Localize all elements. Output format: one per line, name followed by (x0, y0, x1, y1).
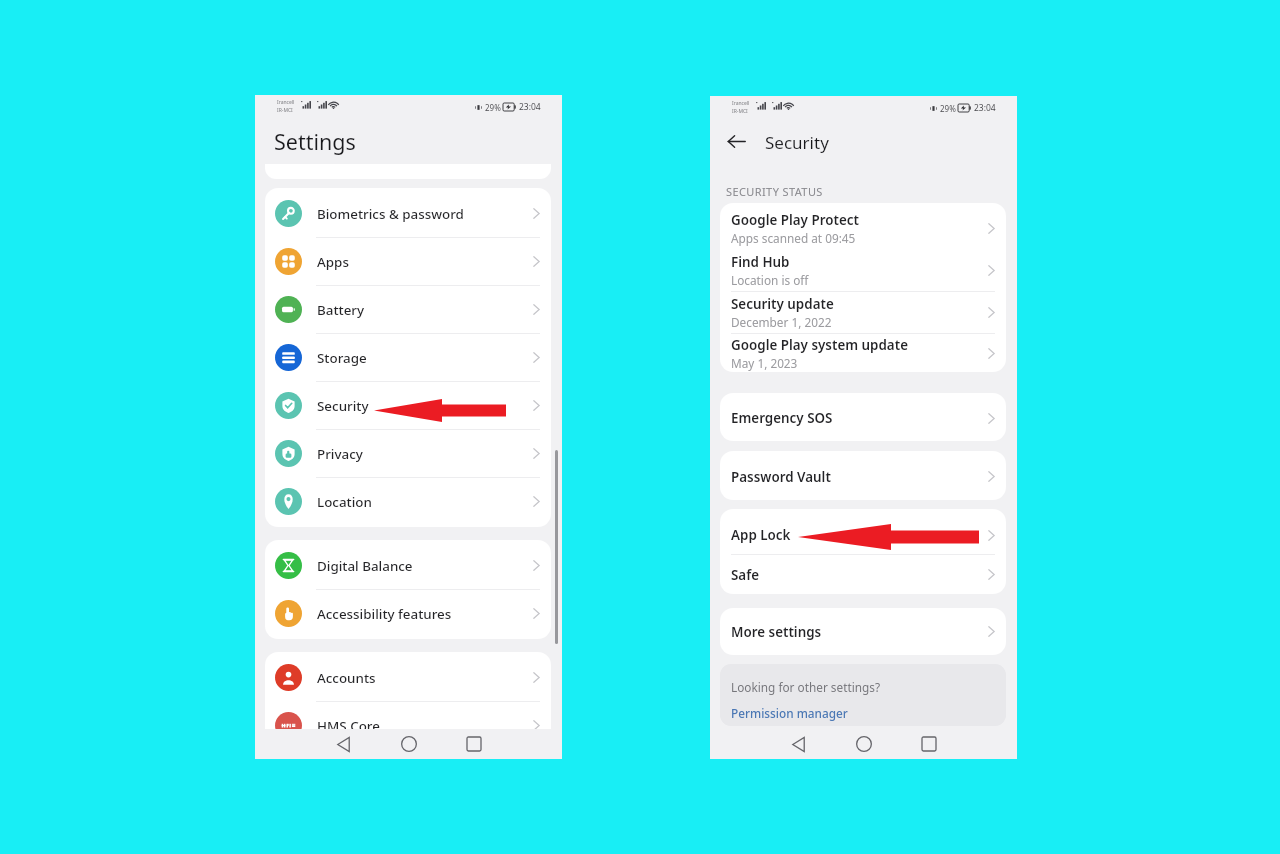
button[interactable]: App Lock (720, 516, 1006, 555)
button[interactable]: Security update (720, 291, 1006, 333)
staticText: Location is off (731, 272, 809, 288)
button[interactable]: Accounts (265, 654, 551, 702)
staticText: SECURITY STATUS (726, 184, 823, 199)
staticText: Apps (317, 253, 349, 271)
staticText: Google Play Protect (731, 211, 859, 229)
staticText: Security (317, 397, 369, 415)
staticText: Biometrics & password (317, 205, 464, 223)
staticText: Settings (274, 127, 356, 156)
staticText: App Lock (731, 526, 791, 544)
staticText: Storage (317, 349, 367, 367)
staticText: HMS Core (317, 717, 380, 735)
staticText: Irancell (277, 99, 295, 106)
staticText: Emergency SOS (731, 409, 833, 427)
button[interactable]: Recent apps (906, 729, 951, 759)
button[interactable]: Digital Balance (265, 542, 551, 590)
staticText: 29% (940, 103, 956, 114)
staticText: Irancell (732, 100, 750, 107)
staticText: Security update (731, 295, 834, 313)
button[interactable]: Password Vault (720, 453, 1006, 500)
button[interactable]: Apps (265, 238, 551, 286)
staticText: 23:04 (974, 102, 996, 114)
staticText: Privacy (317, 445, 363, 463)
button[interactable]: Google Play system update (720, 333, 1006, 372)
button[interactable]: Accessibility features (265, 590, 551, 637)
staticText: Password Vault (731, 468, 831, 486)
staticText: Looking for other settings? (731, 679, 881, 695)
button[interactable]: Security (265, 382, 551, 430)
button[interactable]: Back (723, 128, 749, 154)
staticText: December 1, 2022 (731, 314, 832, 330)
button[interactable]: Recent apps (451, 729, 496, 759)
staticText: 29% (485, 102, 501, 113)
staticText: Security (765, 131, 829, 154)
button[interactable]: Emergency SOS (720, 395, 1006, 441)
staticText: IR-MCI (732, 108, 748, 115)
staticText: Google Play system update (731, 336, 908, 354)
staticText: Find Hub (731, 253, 790, 271)
staticText: 23:04 (519, 101, 541, 113)
button[interactable]: Home (841, 729, 886, 759)
staticText: Location (317, 493, 372, 511)
button[interactable]: Google Play Protect (720, 207, 1006, 249)
button[interactable]: Home (386, 729, 431, 759)
button[interactable]: Permission manager (731, 705, 848, 721)
staticText: Battery (317, 301, 365, 319)
staticText: Apps scanned at 09:45 (731, 230, 856, 246)
button[interactable]: Safe (720, 555, 1006, 594)
button[interactable]: Back (321, 729, 366, 759)
staticText: Digital Balance (317, 557, 413, 575)
button[interactable]: Storage (265, 334, 551, 382)
button[interactable]: Battery (265, 286, 551, 334)
staticText: Safe (731, 566, 759, 584)
button[interactable]: Find Hub (720, 249, 1006, 291)
staticText: May 1, 2023 (731, 355, 798, 371)
staticText: IR-MCI (277, 107, 293, 114)
button[interactable]: Location (265, 478, 551, 525)
button[interactable]: Back (776, 729, 821, 759)
staticText: More settings (731, 623, 822, 641)
button[interactable]: Biometrics & password (265, 190, 551, 238)
staticText: Accessibility features (317, 605, 452, 623)
button[interactable]: More settings (720, 608, 1006, 655)
button[interactable]: Privacy (265, 430, 551, 478)
staticText: Accounts (317, 669, 376, 687)
button[interactable]: HMS Core (265, 702, 551, 749)
